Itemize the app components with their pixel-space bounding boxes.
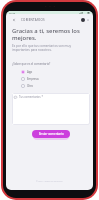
button[interactable]: Tus comentarios * (12, 93, 90, 125)
staticText: Gracias a ti, seremos los mejores. (12, 27, 90, 42)
staticText: © 2021 - Todos los derechos (36, 180, 63, 183)
staticText: Es por ello que tus comentarios son muy … (12, 44, 72, 52)
button[interactable]: Back (7, 15, 21, 25)
button[interactable]: Empresa (12, 77, 90, 81)
button[interactable]: Enviar comentario (32, 130, 70, 138)
button[interactable]: Account (81, 15, 93, 25)
button[interactable]: Otro (12, 84, 90, 88)
staticText: ¿Sobre que es el comentario? (12, 62, 51, 66)
staticText: Empresa (27, 77, 39, 81)
staticText: COMENTARIOS (21, 18, 45, 22)
staticText: Enviar comentario (39, 132, 64, 136)
staticText: Tus comentarios * (19, 95, 43, 99)
staticText: App (27, 70, 33, 74)
staticText: Otro (27, 84, 33, 88)
button[interactable]: App (12, 70, 90, 74)
staticText: 20:26 (9, 11, 16, 14)
